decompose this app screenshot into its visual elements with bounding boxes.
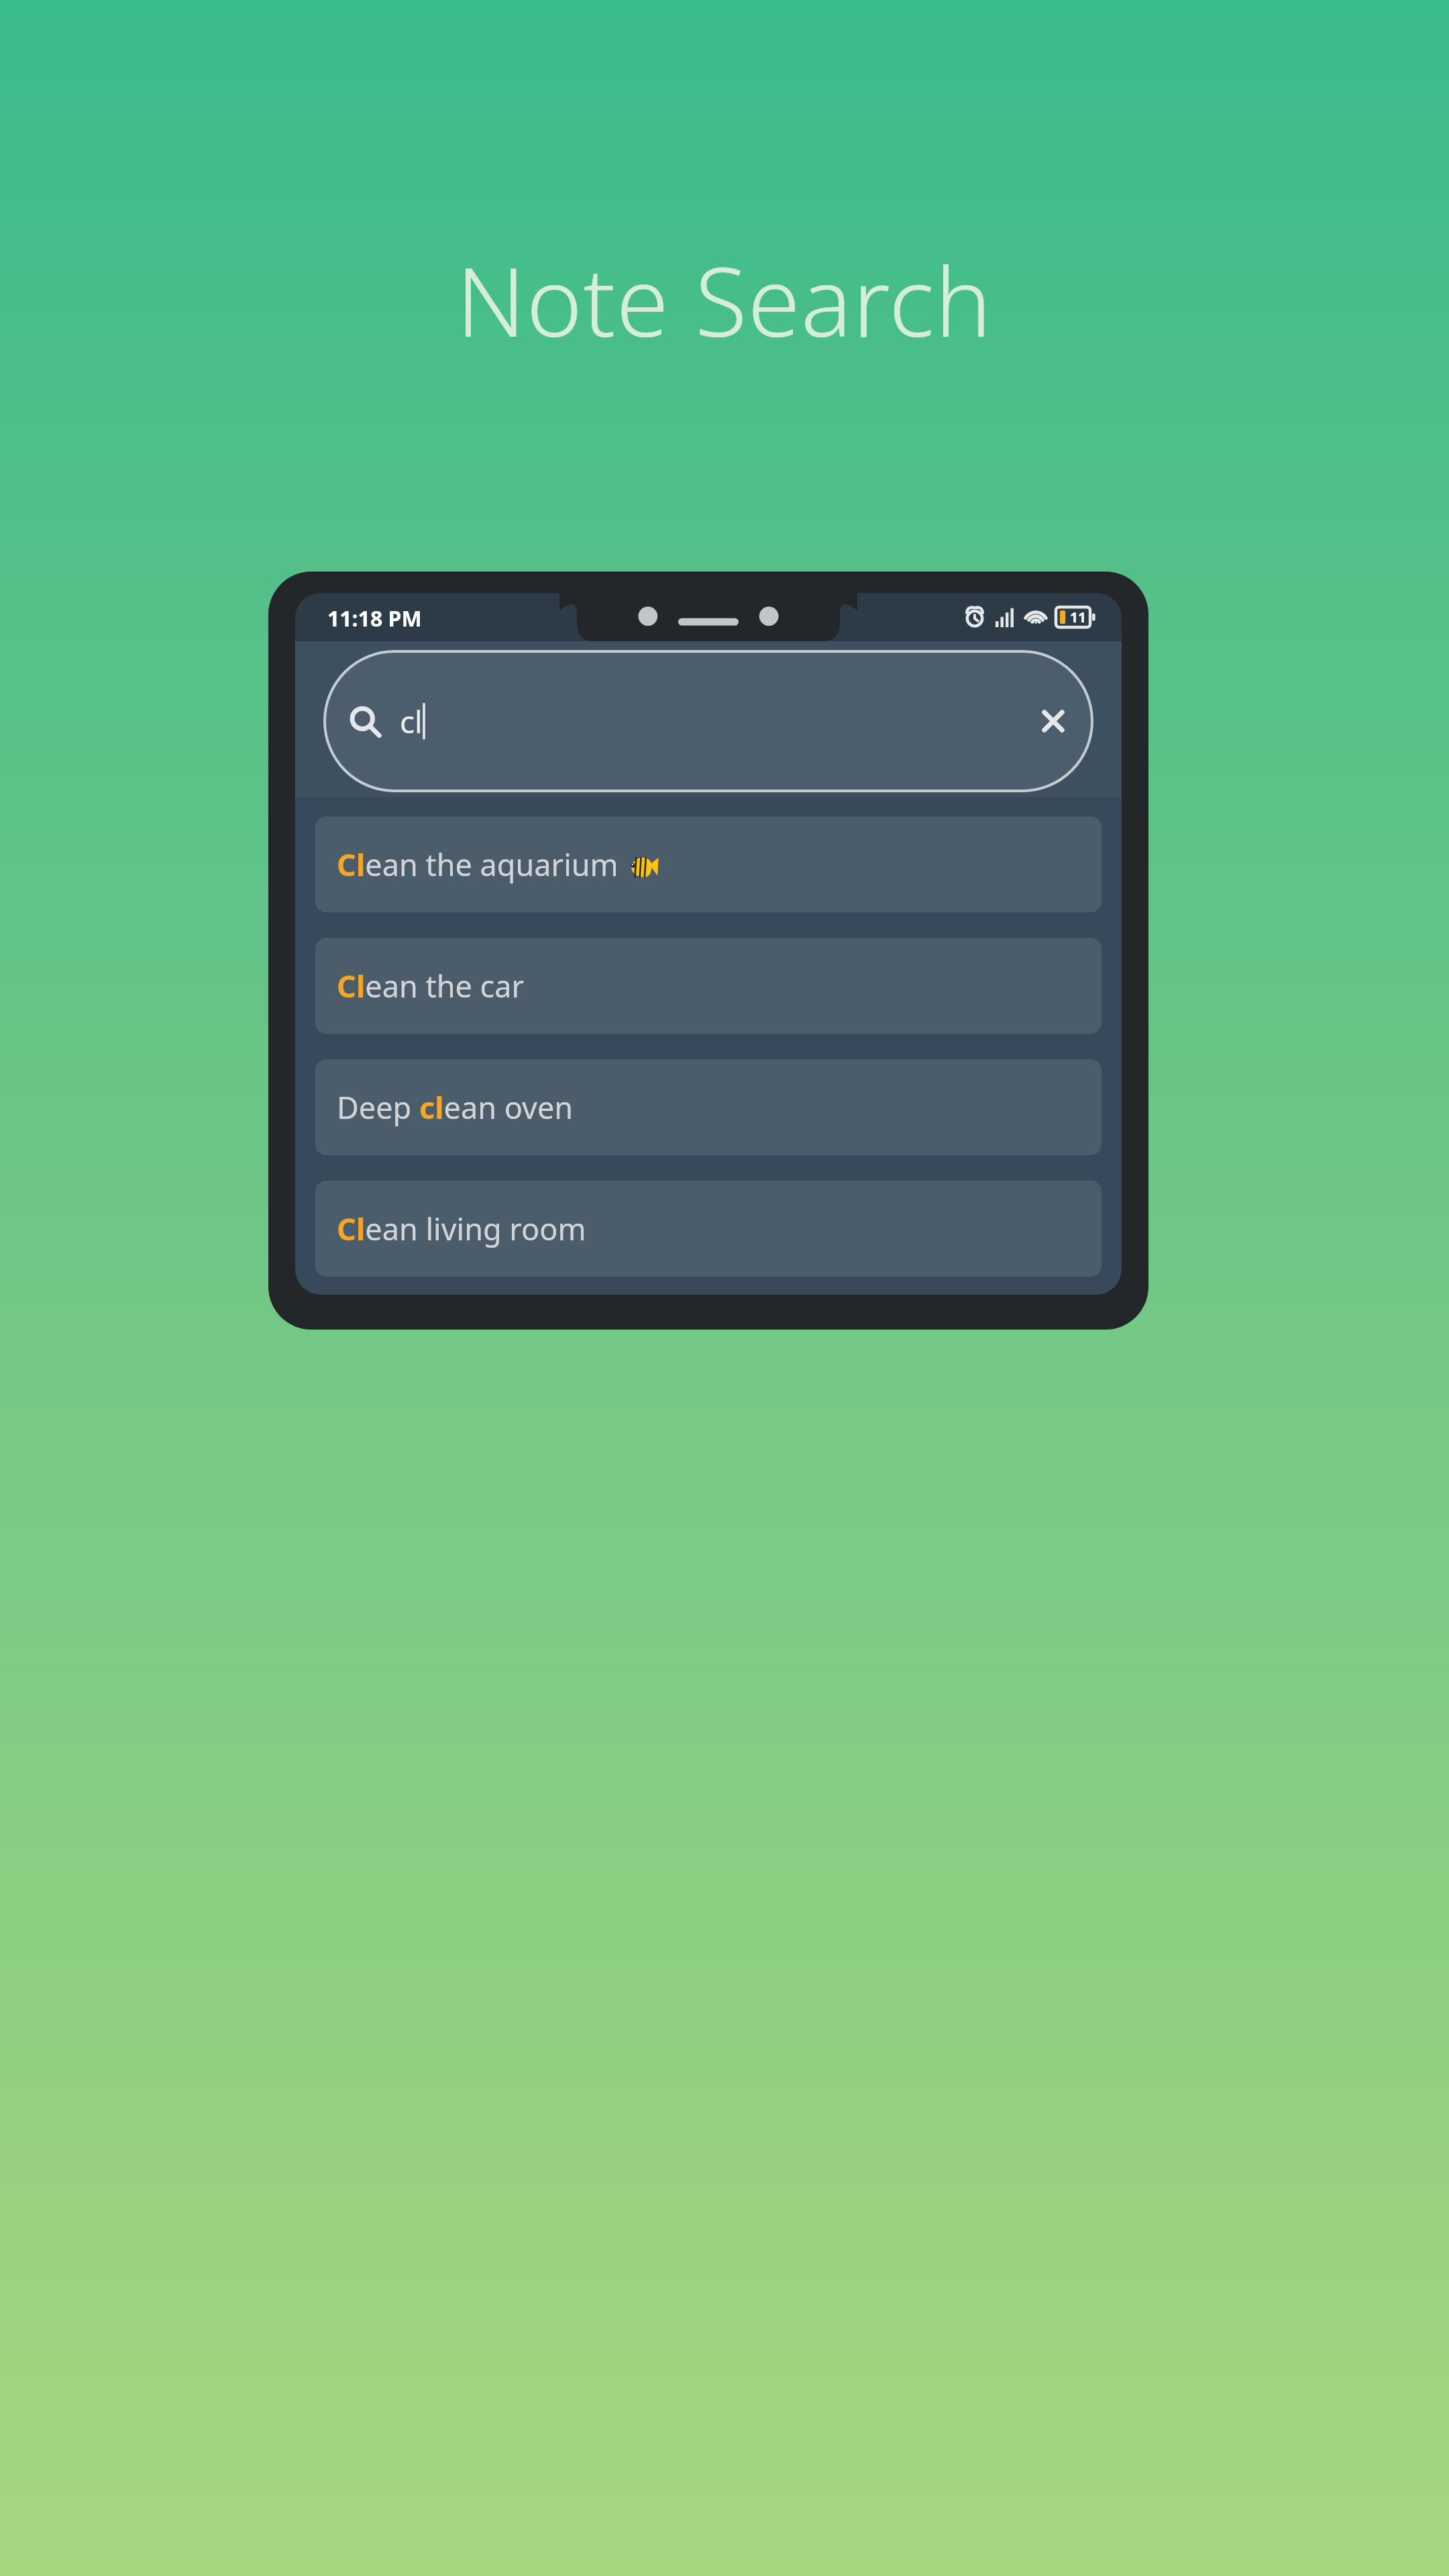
button[interactable]: Deep clean oven: [315, 1059, 1102, 1155]
button[interactable]: Clear search: [1021, 689, 1085, 753]
button[interactable]: Clean living room: [315, 1181, 1102, 1277]
button[interactable]: Search: [325, 651, 1092, 791]
staticText: 11:18 PM: [327, 604, 422, 633]
staticText: Note Search: [456, 235, 993, 364]
button[interactable]: Clean the aquarium: [315, 816, 1102, 912]
staticText: Clean living room: [337, 1208, 586, 1249]
staticText: Clean the aquarium: [337, 844, 627, 885]
staticText: Deep clean oven: [337, 1087, 574, 1128]
staticText: Clean the car: [337, 965, 525, 1006]
other: Search: [349, 706, 380, 737]
staticText: cl: [400, 700, 423, 743]
button[interactable]: Clean the car: [315, 938, 1102, 1034]
staticText: 11: [1070, 608, 1087, 627]
